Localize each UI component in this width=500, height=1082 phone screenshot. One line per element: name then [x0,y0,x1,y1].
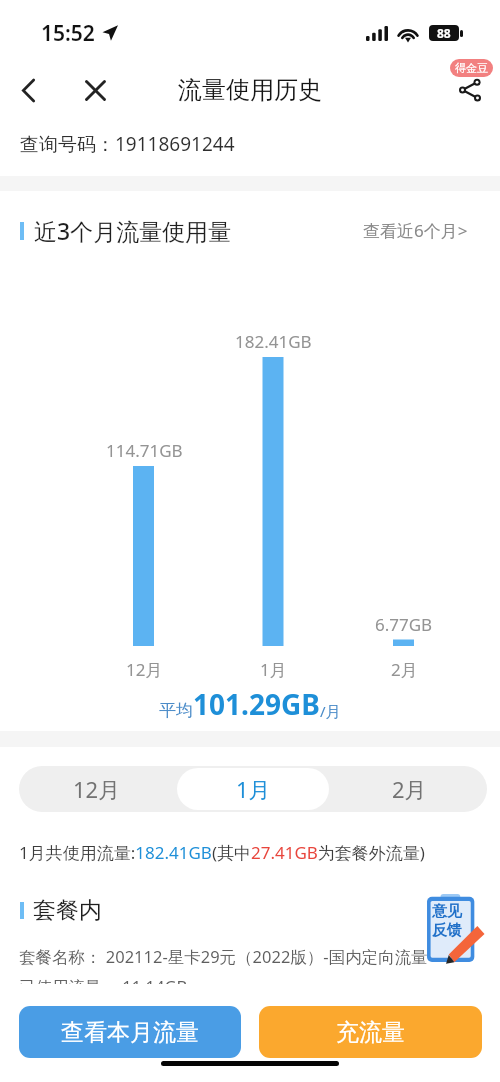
button[interactable]: Share [445,65,495,115]
button[interactable]: 查看本月流量 [19,1006,241,1058]
staticText: 1月共使用流量:182.41GB(其中27.41GB为套餐外流量) [19,841,425,864]
staticText: 2月 [391,658,418,681]
staticText: 15:52 [41,19,95,48]
staticText: 套餐内 [33,896,102,925]
button[interactable]: 意见反馈 [424,893,479,963]
staticText: 反馈 [432,921,462,940]
staticText: 充流量 [336,1018,405,1047]
staticText: 查看本月流量 [61,1018,199,1047]
staticText: 101.29GB [193,685,320,723]
staticText: 查看近6个月> [363,219,468,242]
staticText: 意见 [432,902,462,921]
staticText: 1月 [260,658,287,681]
button[interactable]: Back [4,66,52,114]
staticText: 已使用流量： 11.14GB [19,975,188,998]
staticText: 182.41GB [235,330,312,353]
staticText: 88 [437,25,451,41]
staticText: 6.77GB [375,613,433,636]
staticText: /月 [320,701,341,721]
staticText: 平均 [159,700,193,721]
staticText: 流量使用历史 [178,75,322,105]
button[interactable]: 1月 [177,768,329,810]
button[interactable]: 查看近6个月> [361,211,470,250]
button[interactable]: 2月 [333,768,485,810]
staticText: 12月 [73,774,121,804]
button[interactable]: Close [71,66,119,114]
staticText: 12月 [126,658,163,681]
button[interactable]: 充流量 [259,1006,482,1058]
button[interactable]: 12月 [21,768,173,810]
staticText: 查询号码：19118691244 [20,131,235,157]
staticText: 得金豆 [455,61,488,75]
staticText: 套餐名称： 202112-星卡29元（2022版）-国内定向流量 [19,945,428,968]
staticText: 1月 [236,774,271,804]
staticText: 2月 [392,774,427,804]
staticText: 近3个月流量使用量 [34,215,232,246]
staticText: 114.71GB [106,439,183,462]
